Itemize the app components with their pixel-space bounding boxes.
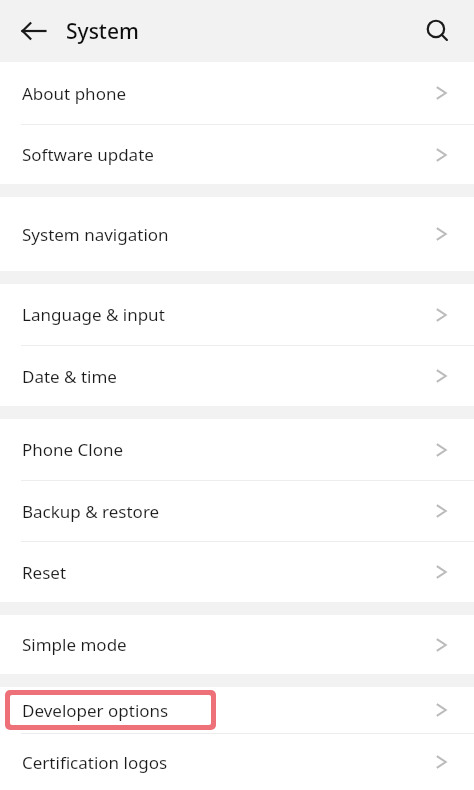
staticText: Developer options bbox=[22, 699, 432, 722]
button[interactable]: System navigation bbox=[0, 197, 474, 271]
button[interactable]: Search bbox=[414, 7, 462, 55]
staticText: About phone bbox=[22, 82, 432, 105]
button[interactable]: Phone Clone bbox=[0, 419, 474, 480]
staticText: Date & time bbox=[22, 365, 432, 388]
staticText: Reset bbox=[22, 561, 432, 584]
button[interactable]: Developer options bbox=[0, 687, 474, 733]
staticText: Backup & restore bbox=[22, 500, 432, 523]
button[interactable]: About phone bbox=[0, 62, 474, 124]
button[interactable]: Certification logos bbox=[0, 734, 474, 790]
staticText: Language & input bbox=[22, 303, 432, 326]
button[interactable]: Backup & restore bbox=[0, 481, 474, 541]
button[interactable]: Back bbox=[10, 7, 58, 55]
staticText: Simple mode bbox=[22, 633, 432, 656]
staticText: Certification logos bbox=[22, 751, 432, 774]
button[interactable]: Language & input bbox=[0, 284, 474, 345]
button[interactable]: Reset bbox=[0, 542, 474, 602]
button[interactable]: Software update bbox=[0, 125, 474, 184]
button[interactable]: Date & time bbox=[0, 346, 474, 406]
staticText: System navigation bbox=[22, 223, 432, 246]
staticText: Phone Clone bbox=[22, 438, 432, 461]
button[interactable]: Simple mode bbox=[0, 615, 474, 674]
staticText: Software update bbox=[22, 143, 432, 166]
staticText: System bbox=[66, 17, 414, 46]
